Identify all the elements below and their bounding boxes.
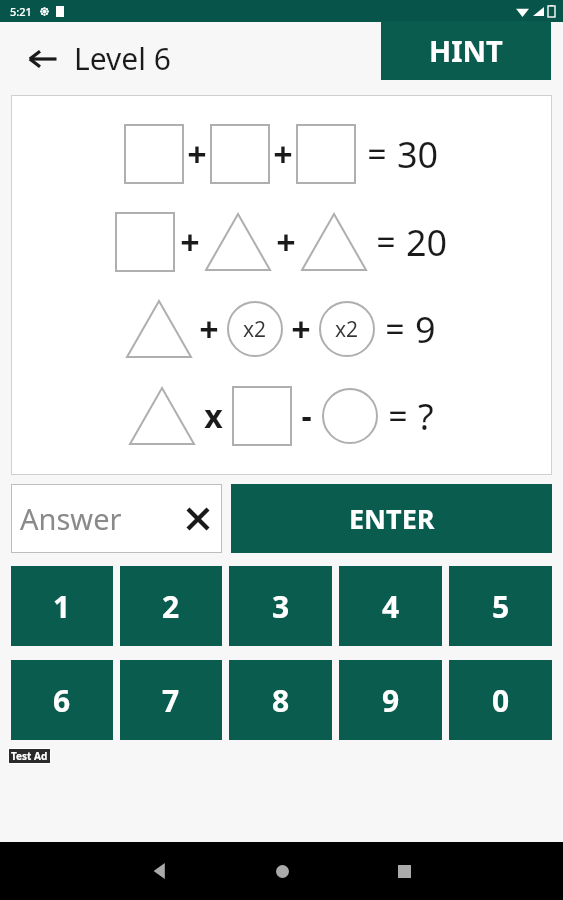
staticText: + [187,131,207,177]
staticText: 6 [53,680,71,721]
staticText: 8 [272,680,290,721]
staticText: + [276,219,296,265]
staticText: ? [418,392,434,441]
staticText: = [376,219,396,265]
staticText: = [367,131,387,177]
staticText: + [199,306,219,352]
staticText: + [291,306,311,352]
button[interactable]: ENTER [231,484,552,553]
staticText: 5:21 [10,4,32,19]
staticText: 3 [272,586,290,627]
staticText: ENTER [349,500,435,537]
staticText: 9 [382,680,400,721]
staticText: = [388,393,408,439]
button[interactable]: 1 [11,566,113,646]
staticText: 5 [492,586,510,627]
staticText: Level 6 [74,38,171,79]
staticText: 7 [162,680,180,721]
button[interactable]: 4 [339,566,442,646]
button[interactable]: Home [259,848,305,894]
button[interactable]: 2 [120,566,222,646]
button[interactable]: 7 [120,660,222,740]
button[interactable]: 6 [11,660,113,740]
button[interactable]: 0 [449,660,552,740]
staticText: = [385,306,405,352]
staticText: + [273,131,293,177]
staticText: 2 [162,586,180,627]
button[interactable]: Answer [11,484,222,553]
staticText: 30 [397,130,439,179]
staticText: 0 [492,680,510,721]
staticText: 20 [406,218,448,267]
button[interactable]: Back [26,38,171,79]
button[interactable]: Recent apps [381,848,427,894]
other: Back [26,42,60,76]
staticText: 1 [53,586,71,627]
staticText: Test Ad [11,749,48,763]
staticText: HINT [429,31,503,70]
staticText: - [301,394,312,438]
button[interactable]: 3 [229,566,332,646]
staticText: x [204,394,223,438]
button[interactable]: Back [137,848,183,894]
staticText: 4 [382,586,400,627]
staticText: x2 [243,315,267,344]
staticText: Answer [20,499,122,538]
button[interactable]: 9 [339,660,442,740]
staticText: x2 [335,315,359,344]
staticText: 9 [415,305,436,354]
staticText: + [180,219,200,265]
button[interactable]: 5 [449,566,552,646]
button[interactable]: Clear answer [183,504,213,534]
button[interactable]: HINT [381,21,551,80]
button[interactable]: 8 [229,660,332,740]
